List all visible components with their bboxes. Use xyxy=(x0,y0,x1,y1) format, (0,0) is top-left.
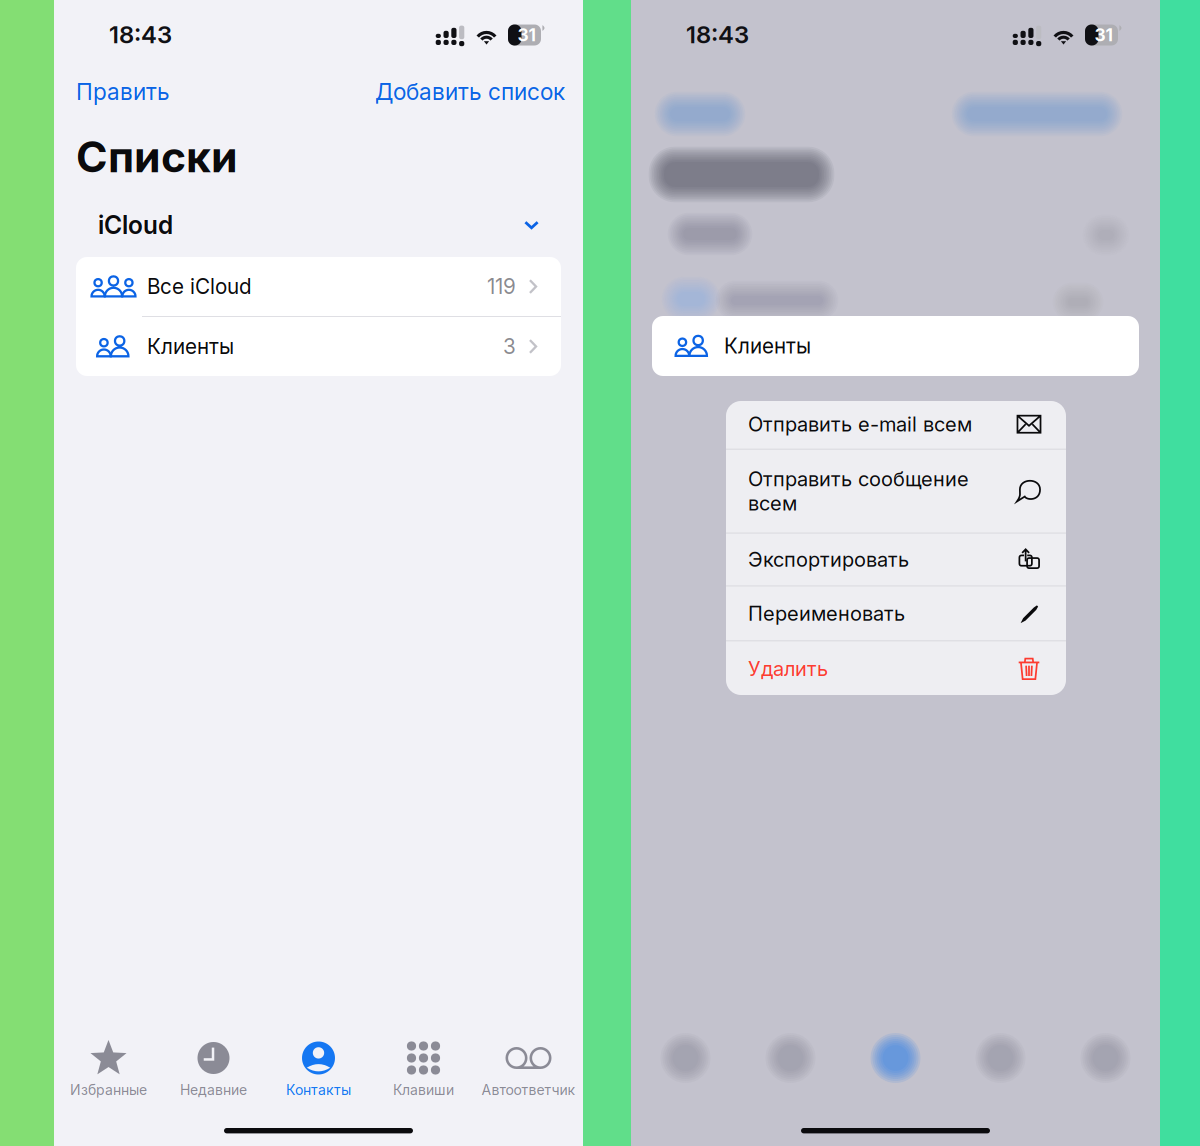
button[interactable]: Экспортировать xyxy=(726,533,1066,585)
button[interactable]: Переименовать xyxy=(726,586,1066,640)
staticText: Клавиши xyxy=(393,1081,454,1098)
staticText: Избранные xyxy=(70,1081,147,1098)
staticText: Недавние xyxy=(180,1081,247,1098)
staticText: Экспортировать xyxy=(748,547,909,572)
button[interactable]: Клавиши xyxy=(371,1040,476,1098)
staticText: 31 xyxy=(517,24,535,45)
staticText: Править xyxy=(76,78,170,105)
button[interactable]: Отправить сообщение всем xyxy=(726,450,1066,533)
button[interactable]: Править xyxy=(68,72,178,111)
button[interactable]: iCloud xyxy=(98,209,539,241)
staticText: 18:43 xyxy=(109,20,172,49)
button[interactable]: Добавить список xyxy=(367,72,573,111)
staticText: Списки xyxy=(76,131,238,183)
staticText: Отправить сообщение всем xyxy=(748,467,969,515)
button[interactable]: Клиенты xyxy=(76,317,561,376)
staticText: 3 xyxy=(503,334,516,359)
staticText: iCloud xyxy=(98,210,173,240)
staticText: Добавить список xyxy=(375,78,565,105)
staticText: Клиенты xyxy=(724,333,811,358)
staticText: Отправить e-mail всем xyxy=(748,412,972,436)
button[interactable]: Все iCloud xyxy=(76,257,561,316)
button[interactable]: Отправить e-mail всем xyxy=(726,400,1066,449)
button[interactable]: Недавние xyxy=(161,1040,266,1098)
staticText: Автоответчик xyxy=(481,1081,575,1098)
staticText: Контакты xyxy=(286,1081,351,1098)
staticText: Все iCloud xyxy=(147,274,252,299)
button[interactable]: Клиенты xyxy=(652,316,1139,376)
staticText: 31 xyxy=(1094,24,1112,45)
staticText: Удалить xyxy=(748,657,828,681)
button[interactable]: Контакты xyxy=(266,1040,371,1098)
button[interactable]: Избранные xyxy=(56,1040,161,1098)
button[interactable]: Удалить xyxy=(726,641,1066,696)
button[interactable]: Автоответчик xyxy=(476,1040,581,1098)
staticText: Переименовать xyxy=(748,601,905,625)
staticText: 119 xyxy=(487,274,516,299)
staticText: Клиенты xyxy=(147,334,234,359)
staticText: 18:43 xyxy=(686,20,749,49)
